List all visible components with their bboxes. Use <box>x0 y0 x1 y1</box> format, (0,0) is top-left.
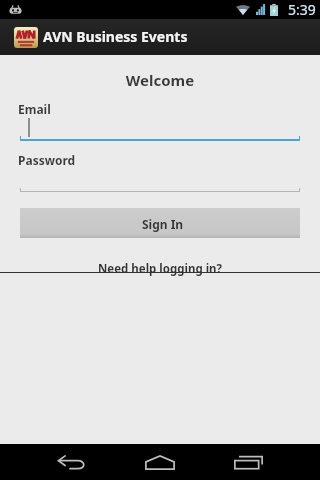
staticText: Email <box>18 101 51 117</box>
button[interactable] <box>0 117 320 141</box>
button[interactable]: Need help logging in? <box>0 261 320 277</box>
staticText: AVN Business Events <box>43 27 188 46</box>
staticText: Password <box>18 152 76 168</box>
button[interactable]: Recent apps <box>224 444 272 480</box>
staticText: Need help logging in? <box>98 261 223 277</box>
staticText: Sign In <box>142 216 184 232</box>
staticText: 5:39 <box>288 0 316 19</box>
staticText: Welcome <box>0 70 320 90</box>
button[interactable] <box>0 169 320 193</box>
button[interactable]: Back <box>47 444 95 480</box>
button[interactable]: Sign In <box>20 208 300 238</box>
button[interactable]: Home <box>136 444 184 480</box>
